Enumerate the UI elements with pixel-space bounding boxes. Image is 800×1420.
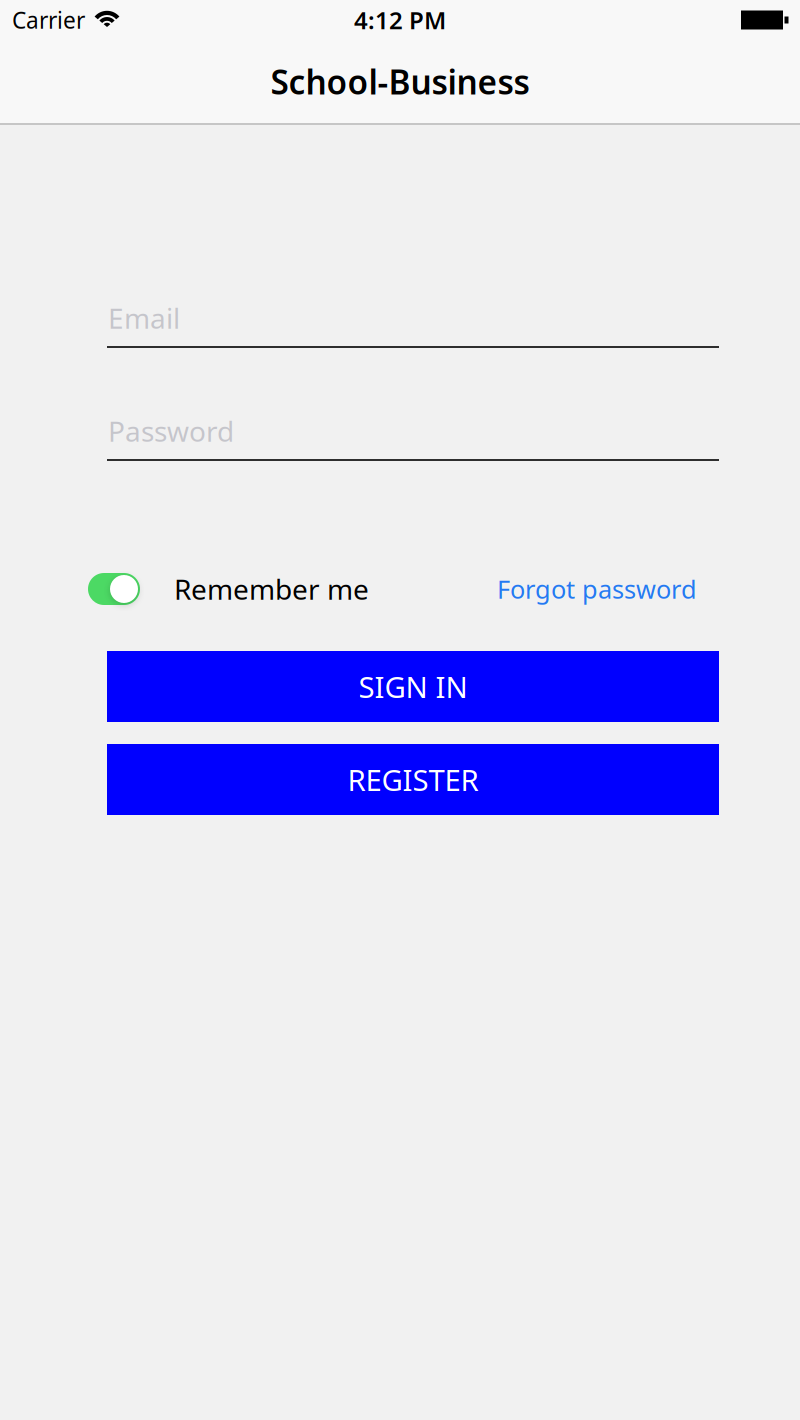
staticText: REGISTER (347, 760, 478, 799)
staticText: Remember me (174, 570, 369, 608)
staticText: 4:12 PM (354, 4, 446, 36)
staticText: SIGN IN (358, 667, 467, 706)
staticText: Password (108, 412, 234, 450)
button[interactable]: REGISTER (107, 744, 719, 815)
staticText: Email (108, 299, 180, 337)
staticText: Carrier (12, 5, 85, 35)
staticText: Forgot password (497, 572, 697, 606)
button[interactable]: Forgot password (497, 572, 697, 606)
button[interactable]: SIGN IN (107, 651, 719, 722)
staticText: School-Business (270, 59, 529, 104)
button[interactable]: Remember me (88, 573, 140, 605)
